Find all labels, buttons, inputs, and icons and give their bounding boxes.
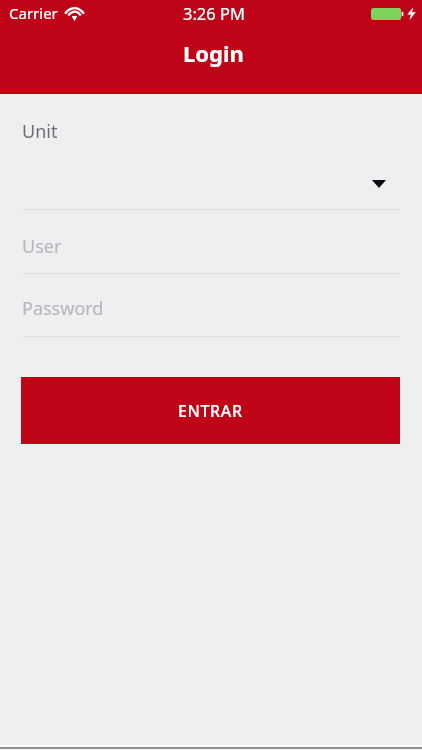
staticText: User (22, 234, 62, 259)
button[interactable]: ENTRAR (21, 377, 400, 444)
staticText: Unit (22, 119, 58, 144)
staticText: ENTRAR (178, 400, 243, 422)
staticText: 3:26 PM (183, 2, 245, 24)
staticText: Login (183, 38, 244, 68)
button[interactable]: User (22, 210, 400, 273)
staticText: Carrier (9, 3, 58, 23)
button[interactable]: Unit, select unit (22, 110, 400, 210)
button[interactable]: Password (22, 274, 400, 336)
staticText: Password (22, 296, 104, 321)
